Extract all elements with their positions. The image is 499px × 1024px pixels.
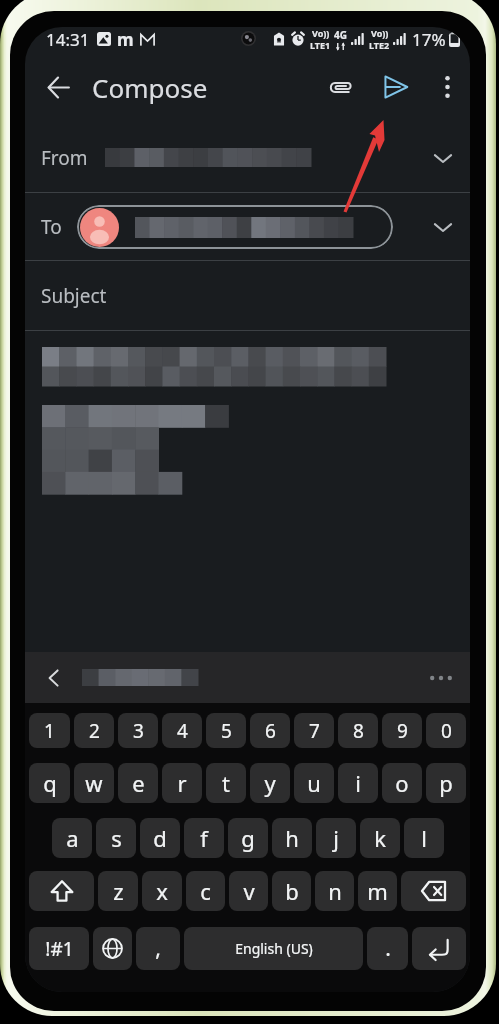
button[interactable]: n xyxy=(315,871,354,911)
staticText: Subject xyxy=(41,283,107,309)
button[interactable]: q xyxy=(29,763,70,803)
staticText: q xyxy=(43,768,57,798)
button[interactable]: h xyxy=(272,818,312,858)
staticText: h xyxy=(285,823,299,853)
staticText: 2 xyxy=(89,718,100,744)
staticText: t xyxy=(222,768,230,798)
button[interactable]: s xyxy=(96,818,136,858)
staticText: n xyxy=(328,876,342,906)
button[interactable]: 9 xyxy=(382,713,422,748)
button[interactable]: English (US) xyxy=(184,927,363,970)
button[interactable]: , xyxy=(136,927,180,970)
button[interactable]: !#1 xyxy=(29,927,89,970)
staticText: u xyxy=(307,768,321,798)
staticText: k xyxy=(374,823,386,853)
button[interactable]: 8 xyxy=(338,713,378,748)
staticText: 0 xyxy=(441,718,452,744)
staticText: 3 xyxy=(133,718,144,744)
button[interactable]: More options xyxy=(430,70,464,104)
button[interactable]: 0 xyxy=(426,713,466,748)
staticText: s xyxy=(111,823,122,853)
button[interactable]: . xyxy=(367,927,408,970)
button[interactable]: From xyxy=(25,123,470,192)
button[interactable]: Change language xyxy=(93,927,132,970)
button[interactable]: f xyxy=(184,818,224,858)
button[interactable]: b xyxy=(272,871,311,911)
staticText: 4G xyxy=(334,28,347,42)
button[interactable]: x xyxy=(142,871,182,911)
staticText: 1 xyxy=(44,718,55,744)
button[interactable]: 4 xyxy=(162,713,202,748)
button[interactable]: 2 xyxy=(74,713,114,748)
staticText: 4 xyxy=(177,718,188,744)
staticText: r xyxy=(177,768,187,798)
button[interactable]: t xyxy=(206,763,246,803)
button[interactable]: To xyxy=(25,193,470,260)
button[interactable]: a xyxy=(52,818,92,858)
staticText: 17% xyxy=(412,28,446,51)
button[interactable]: Send xyxy=(375,66,417,108)
staticText: 8 xyxy=(353,718,364,744)
staticText: 14:31 xyxy=(46,28,90,51)
staticText: i xyxy=(355,768,361,798)
button[interactable]: v xyxy=(229,871,268,911)
staticText: f xyxy=(200,823,208,853)
staticText: From xyxy=(41,145,88,171)
button[interactable]: o xyxy=(382,763,422,803)
button[interactable]: z xyxy=(98,871,138,911)
button[interactable]: More xyxy=(424,661,458,695)
button[interactable]: Enter xyxy=(412,927,466,970)
button[interactable]: 7 xyxy=(294,713,334,748)
button[interactable]: 5 xyxy=(206,713,246,748)
button[interactable]: i xyxy=(338,763,378,803)
button[interactable]: p xyxy=(426,763,466,803)
staticText: LTE2 xyxy=(369,39,390,51)
staticText: b xyxy=(285,876,299,906)
button[interactable]: k xyxy=(360,818,400,858)
button[interactable]: l xyxy=(404,818,444,858)
staticText: Vo)) xyxy=(312,27,330,39)
staticText: 7 xyxy=(309,718,320,744)
staticText: m xyxy=(367,876,388,906)
button[interactable]: e xyxy=(118,763,158,803)
staticText: , xyxy=(155,934,161,963)
button[interactable]: d xyxy=(140,818,180,858)
staticText: !#1 xyxy=(45,936,74,962)
staticText: e xyxy=(132,768,145,798)
staticText: l xyxy=(421,823,427,853)
staticText: d xyxy=(153,823,167,853)
button[interactable]: g xyxy=(228,818,268,858)
button[interactable]: Previous suggestion xyxy=(37,661,71,695)
button[interactable]: r xyxy=(162,763,202,803)
button[interactable]: 3 xyxy=(118,713,158,748)
staticText: . xyxy=(385,934,391,963)
staticText: o xyxy=(395,768,409,798)
button[interactable]: Subject xyxy=(25,261,470,330)
staticText: m xyxy=(117,28,134,51)
staticText: z xyxy=(113,876,124,906)
staticText: English (US) xyxy=(235,939,313,958)
button[interactable]: y xyxy=(250,763,290,803)
staticText: 9 xyxy=(397,718,408,744)
button[interactable]: w xyxy=(74,763,114,803)
staticText: x xyxy=(156,876,168,906)
staticText: y xyxy=(264,768,276,798)
button[interactable]: j xyxy=(316,818,356,858)
staticText: j xyxy=(333,823,339,853)
button[interactable]: Attach file xyxy=(319,66,361,108)
button[interactable]: u xyxy=(294,763,334,803)
staticText: Vo)) xyxy=(371,27,389,39)
button[interactable]: c xyxy=(186,871,225,911)
button[interactable]: Back xyxy=(37,66,79,108)
staticText: 6 xyxy=(265,718,276,744)
staticText: 5 xyxy=(221,718,232,744)
button[interactable]: Shift xyxy=(29,871,94,911)
staticText: v xyxy=(243,876,255,906)
button[interactable]: m xyxy=(358,871,397,911)
button[interactable]: 1 xyxy=(29,713,70,748)
button[interactable]: Backspace xyxy=(401,871,466,911)
staticText: To xyxy=(41,214,62,240)
staticText: LTE1 xyxy=(310,39,331,51)
staticText: g xyxy=(241,823,255,853)
button[interactable]: 6 xyxy=(250,713,290,748)
